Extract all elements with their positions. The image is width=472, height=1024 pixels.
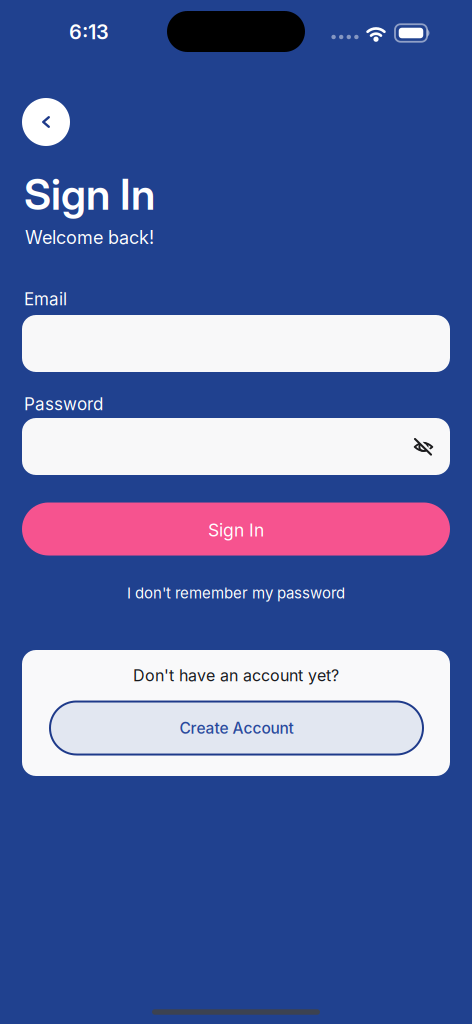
staticText: Email (24, 289, 67, 309)
button[interactable]: Show password (410, 433, 436, 459)
staticText: Don't have an account yet? (133, 666, 339, 685)
button[interactable]: Back (22, 98, 70, 146)
button[interactable]: Create Account (50, 701, 423, 754)
staticText: Password (24, 394, 103, 414)
button[interactable]: I don't remember my password (127, 584, 345, 602)
staticText: Create Account (179, 719, 293, 737)
button[interactable]: Sign In (22, 502, 450, 555)
staticText: Sign In (24, 169, 155, 220)
staticText: I don't remember my password (127, 584, 345, 602)
staticText: Welcome back! (25, 227, 154, 248)
staticText: Sign In (208, 520, 264, 541)
staticText: 6:13 (69, 20, 109, 44)
